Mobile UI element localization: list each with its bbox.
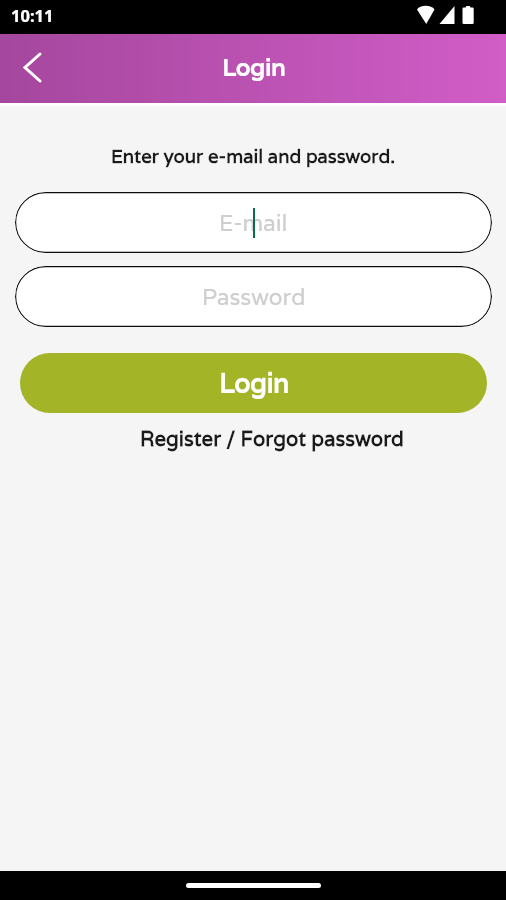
button[interactable]: Password bbox=[15, 266, 492, 327]
staticText: Password bbox=[202, 282, 306, 311]
button[interactable]: E-mail bbox=[15, 192, 492, 253]
staticText: Enter your e-mail and password. bbox=[0, 144, 506, 168]
staticText: Register / Forgot password bbox=[140, 425, 404, 451]
staticText: 10:11 bbox=[11, 4, 54, 26]
staticText: E-mail bbox=[219, 208, 288, 237]
button[interactable]: Login bbox=[20, 353, 487, 413]
button[interactable]: Register / Forgot password bbox=[38, 425, 506, 451]
staticText: Login bbox=[222, 52, 286, 83]
other: Wi-Fi, signal and battery status bbox=[417, 6, 474, 24]
button[interactable]: Back bbox=[10, 47, 54, 91]
staticText: Login bbox=[219, 367, 289, 401]
